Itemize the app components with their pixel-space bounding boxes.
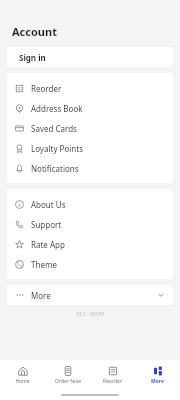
button[interactable]: More (135, 366, 180, 385)
staticText: Order Now (55, 378, 81, 385)
button[interactable]: Saved Cards (7, 118, 173, 138)
staticText: Sign in (19, 52, 46, 63)
staticText: Saved Cards (31, 123, 77, 134)
staticText: Notifications (31, 163, 79, 174)
staticText: About Us (31, 199, 66, 210)
button[interactable]: Sign in (7, 47, 173, 67)
staticText: Reorder (103, 378, 122, 385)
button[interactable]: Theme (7, 254, 173, 274)
staticText: Loyalty Points (31, 143, 83, 154)
button[interactable]: Notifications (7, 158, 173, 178)
button[interactable]: Loyalty Points (7, 138, 173, 158)
staticText: More (151, 378, 164, 385)
button[interactable]: Address Book (7, 98, 173, 118)
staticText: Address Book (31, 103, 83, 114)
staticText: Theme (31, 259, 57, 270)
button[interactable]: More (7, 285, 173, 305)
staticText: Account (12, 24, 57, 39)
staticText: Rate App (31, 239, 65, 250)
button[interactable]: Support (7, 214, 173, 234)
button[interactable]: Reorder (7, 78, 173, 98)
staticText: 12.1 · 50147 (0, 311, 180, 318)
button[interactable]: Home (0, 366, 45, 385)
staticText: Reorder (31, 83, 62, 94)
button[interactable]: Order Now (45, 366, 90, 385)
button[interactable]: Rate App (7, 234, 173, 254)
button[interactable]: About Us (7, 194, 173, 214)
button[interactable]: Reorder (90, 366, 135, 385)
staticText: More (31, 290, 51, 301)
staticText: Support (31, 219, 62, 230)
staticText: Home (15, 378, 30, 385)
